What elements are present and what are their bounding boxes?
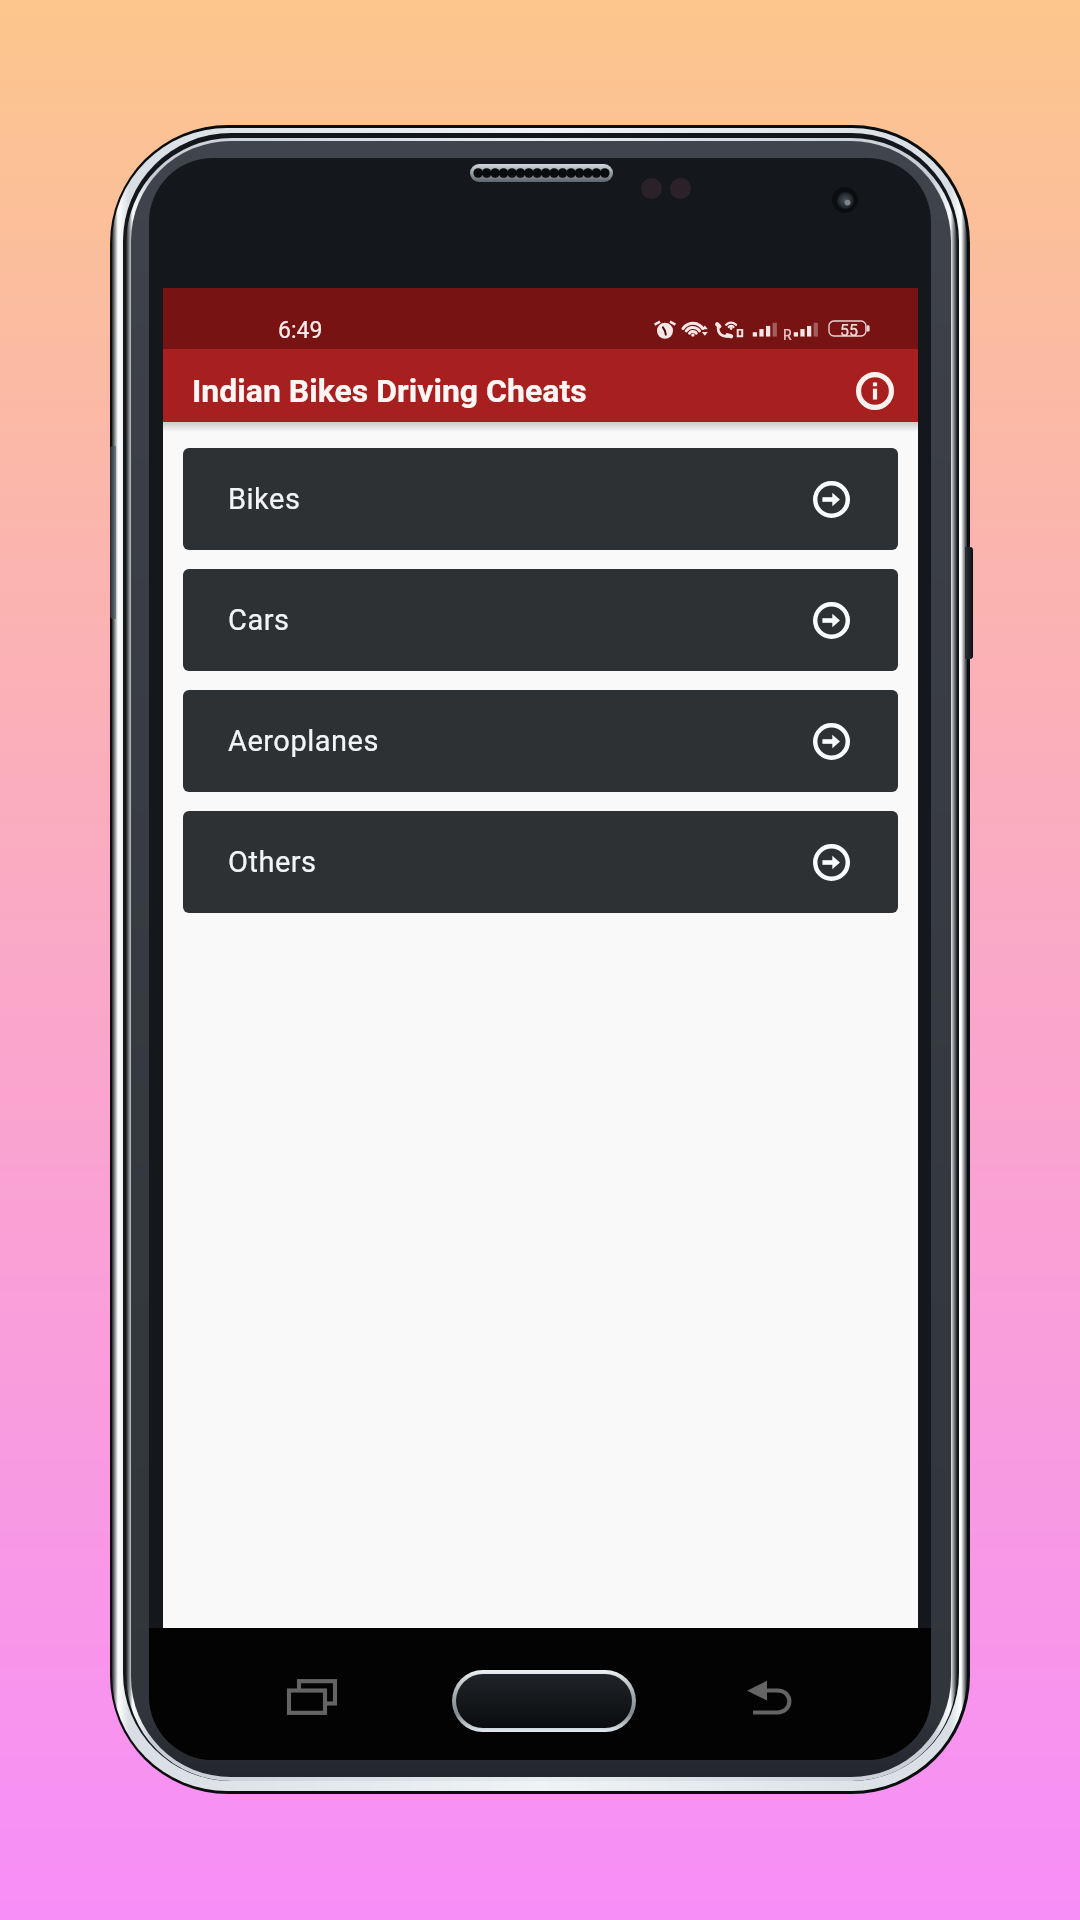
staticText: 6:49 <box>278 317 323 344</box>
button[interactable]: Cars <box>183 569 898 671</box>
button[interactable]: Recent apps <box>280 1665 344 1729</box>
staticText: Indian Bikes Driving Cheats <box>192 372 587 410</box>
button[interactable]: Others <box>183 811 898 913</box>
staticText: R <box>783 327 792 343</box>
staticText: Bikes <box>228 482 301 516</box>
staticText: 55 <box>840 321 858 336</box>
staticText: Aeroplanes <box>228 724 379 758</box>
button[interactable]: Bikes <box>183 448 898 550</box>
staticText: Cars <box>228 603 290 637</box>
staticText: Others <box>228 845 317 879</box>
button[interactable]: Aeroplanes <box>183 690 898 792</box>
button[interactable]: Info <box>847 358 903 414</box>
button[interactable]: Home <box>452 1670 636 1732</box>
button[interactable]: Back <box>739 1665 803 1729</box>
